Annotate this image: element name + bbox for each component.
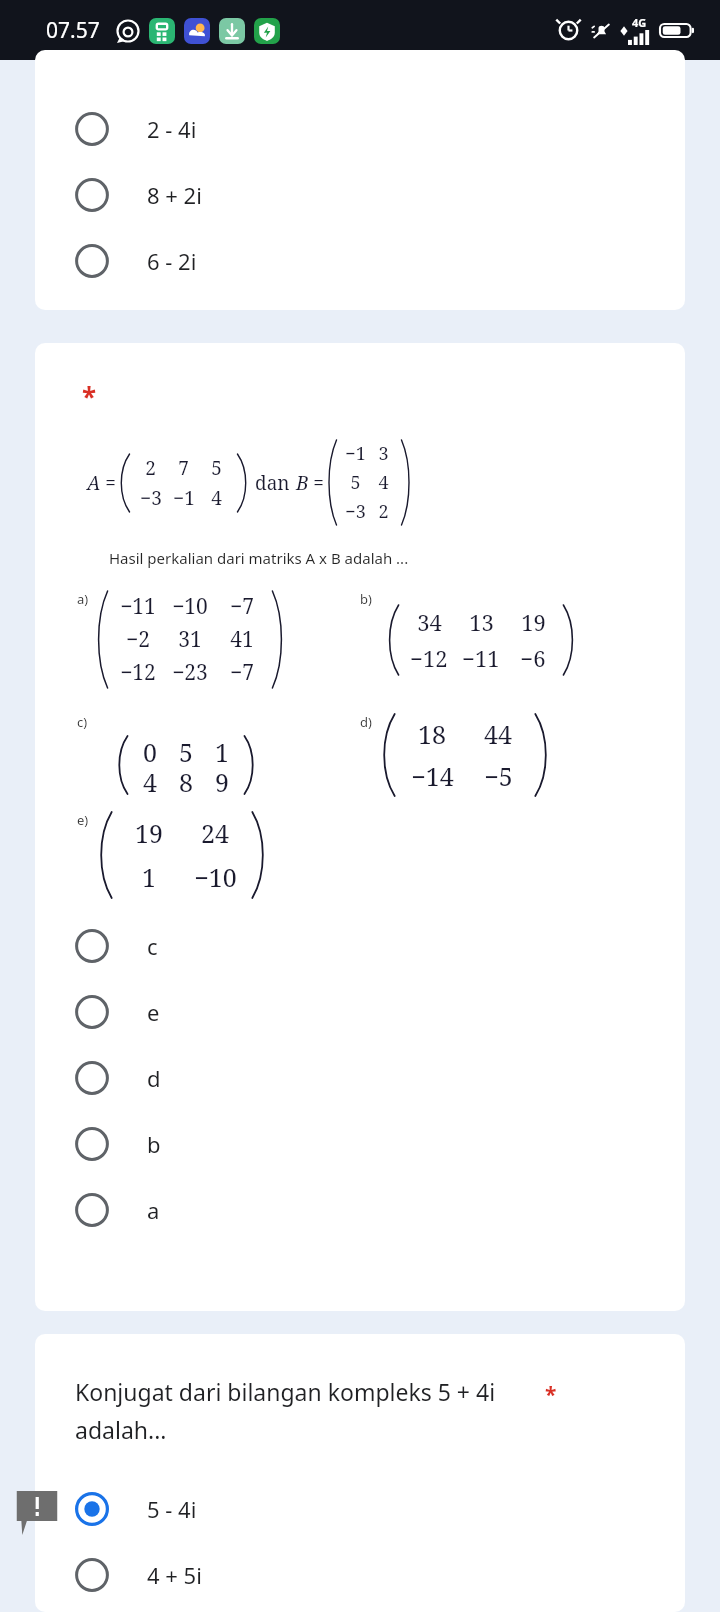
staticText: 6 - 2i	[147, 246, 197, 276]
staticText: −10	[172, 592, 208, 621]
staticText: 4	[211, 485, 222, 511]
staticText: −7	[230, 592, 254, 621]
staticText: 0	[143, 735, 157, 765]
staticText: −1	[173, 485, 195, 511]
staticText: 2 - 4i	[147, 114, 197, 144]
staticText: −12	[120, 658, 156, 687]
staticText: e	[147, 997, 160, 1027]
staticText: 5	[211, 455, 222, 481]
staticText: c)	[77, 713, 88, 731]
staticText: −6	[520, 643, 546, 673]
staticText: Hasil perkalian dari matriks A x B adala…	[109, 548, 409, 568]
staticText: *	[545, 1380, 557, 1409]
staticText: d	[147, 1063, 161, 1093]
staticText: 4G	[632, 15, 647, 30]
staticText: 24	[201, 816, 229, 850]
staticText: 1	[215, 735, 229, 765]
staticText: e)	[77, 811, 89, 829]
staticText: 8	[179, 765, 193, 795]
staticText: A =	[87, 470, 116, 496]
staticText: 3	[378, 441, 389, 466]
staticText: −2	[126, 625, 150, 654]
staticText: 31	[178, 625, 202, 654]
staticText: 07.57	[46, 16, 100, 45]
button[interactable]: a	[35, 1177, 685, 1243]
staticText: −12	[410, 643, 448, 673]
button[interactable]: e	[35, 979, 685, 1045]
staticText: 18	[418, 717, 446, 751]
staticText: *	[82, 379, 97, 414]
staticText: 4	[143, 765, 157, 795]
staticText: −3	[140, 485, 162, 511]
staticText: 4	[378, 470, 389, 495]
staticText: dan	[255, 470, 290, 496]
staticText: −10	[194, 860, 237, 894]
staticText: 7	[178, 455, 189, 481]
staticText: −14	[411, 759, 454, 793]
button[interactable]: 6 - 2i	[35, 228, 685, 294]
staticText: 2	[145, 455, 156, 481]
button[interactable]: 8 + 2i	[35, 162, 685, 228]
staticText: 5 - 4i	[147, 1494, 197, 1524]
staticText: −3	[345, 499, 366, 524]
staticText: 44	[484, 717, 512, 751]
staticText: Konjugat dari bilangan kompleks 5 + 4i a…	[75, 1376, 545, 1446]
staticText: −1	[345, 441, 366, 466]
staticText: b)	[360, 590, 372, 608]
button[interactable]: b	[35, 1111, 685, 1177]
staticText: 9	[215, 765, 229, 795]
staticText: 1	[142, 860, 156, 894]
staticText: d)	[360, 713, 372, 731]
staticText: 19	[521, 607, 546, 637]
staticText: −5	[484, 759, 513, 793]
button[interactable]: 5 - 4i	[35, 1476, 685, 1542]
staticText: 5	[179, 735, 193, 765]
button[interactable]: 2 - 4i	[35, 96, 685, 162]
staticText: c	[147, 931, 158, 961]
staticText: 19	[135, 816, 163, 850]
button[interactable]: 4 + 5i	[35, 1542, 685, 1608]
staticText: 13	[469, 607, 494, 637]
staticText: a)	[77, 590, 89, 608]
staticText: B =	[296, 470, 324, 496]
staticText: −7	[230, 658, 254, 687]
staticText: 4 + 5i	[147, 1560, 202, 1590]
staticText: 41	[230, 625, 254, 654]
staticText: −11	[120, 592, 156, 621]
staticText: a	[147, 1195, 160, 1225]
button[interactable]: Feedback	[14, 1488, 60, 1538]
staticText: −23	[172, 658, 208, 687]
staticText: 2	[378, 499, 389, 524]
button[interactable]: c	[35, 913, 685, 979]
staticText: b	[147, 1129, 161, 1159]
staticText: 34	[417, 607, 442, 637]
staticText: −11	[462, 643, 500, 673]
button[interactable]: d	[35, 1045, 685, 1111]
staticText: 5	[350, 470, 361, 495]
staticText: 8 + 2i	[147, 180, 202, 210]
